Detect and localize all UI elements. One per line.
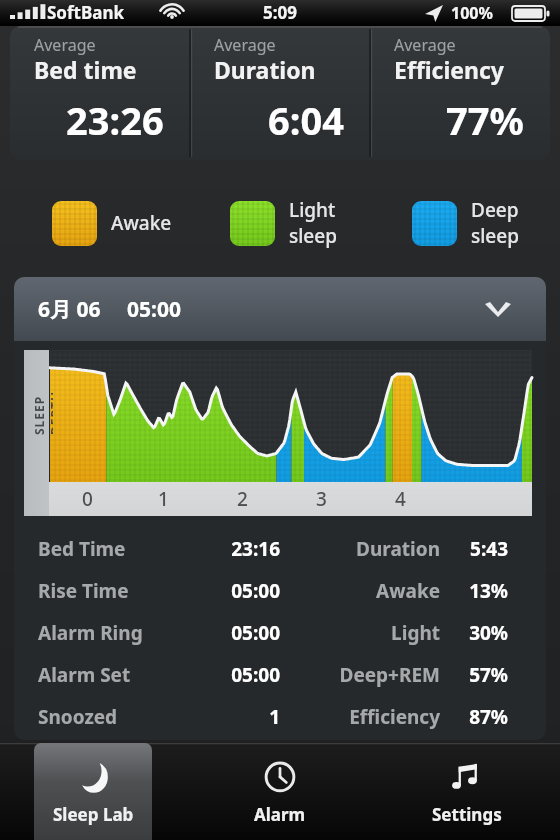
staticText: Light [289, 197, 336, 223]
button[interactable]: Expand session [480, 291, 516, 327]
staticText: Light [300, 620, 440, 646]
staticText: Alarm [254, 803, 306, 826]
staticText: 100% [451, 2, 493, 24]
button[interactable]: Rise Time [14, 570, 546, 612]
staticText: 57% [450, 662, 508, 688]
button[interactable]: Alarm [221, 743, 339, 840]
staticText: 05:00 [170, 662, 280, 688]
button[interactable]: Alarm Ring [14, 612, 546, 654]
staticText: 77% [446, 94, 524, 146]
staticText: 1 [158, 486, 169, 512]
staticText: Average [34, 34, 96, 56]
staticText: Deep [471, 197, 519, 223]
staticText: Average [394, 34, 456, 56]
staticText: 3 [316, 486, 327, 512]
button[interactable]: Alarm Set [14, 654, 546, 696]
staticText: 0 [82, 486, 93, 512]
staticText: Deep+REM [300, 662, 440, 688]
staticText: SLEEP DEPTH [31, 363, 53, 435]
staticText: Duration [214, 54, 316, 85]
staticText: 6:04 [268, 94, 344, 146]
staticText: Alarm Ring [38, 620, 170, 646]
staticText: 2 [237, 486, 248, 512]
button[interactable]: 6月 06 [14, 277, 546, 341]
staticText: 6月 06 [38, 295, 101, 324]
staticText: Awake [300, 578, 440, 604]
staticText: Efficiency [300, 704, 440, 730]
staticText: 5:43 [450, 536, 508, 562]
staticText: Efficiency [394, 54, 504, 85]
staticText: 23:16 [170, 536, 280, 562]
button[interactable]: Awake [52, 193, 172, 253]
staticText: Sleep Lab [53, 803, 134, 826]
button[interactable]: Bed Time [14, 528, 546, 570]
staticText: Duration [300, 536, 440, 562]
button[interactable]: Average [10, 26, 550, 160]
staticText: Alarm Set [38, 662, 170, 688]
staticText: 23:26 [66, 94, 164, 146]
staticText: 87% [450, 704, 508, 730]
staticText: 05:00 [170, 620, 280, 646]
button[interactable]: Deep [412, 193, 519, 253]
staticText: Snoozed [38, 704, 170, 730]
staticText: sleep [471, 223, 519, 249]
staticText: 05:00 [170, 578, 280, 604]
staticText: 05:00 [127, 295, 181, 324]
button[interactable]: Snoozed [14, 696, 546, 738]
staticText: Settings [432, 803, 502, 826]
staticText: 4 [395, 486, 406, 512]
button[interactable]: Settings [408, 743, 526, 840]
staticText: SoftBank [47, 1, 125, 24]
button[interactable]: Sleep Lab [34, 743, 152, 840]
staticText: 30% [450, 620, 508, 646]
staticText: Awake [111, 210, 172, 236]
staticText: Bed time [34, 54, 137, 85]
button[interactable]: Light [230, 193, 337, 253]
staticText: 13% [450, 578, 508, 604]
staticText: Average [214, 34, 276, 56]
staticText: 1 [170, 704, 280, 730]
staticText: sleep [289, 223, 337, 249]
staticText: Rise Time [38, 578, 170, 604]
staticText: 5:09 [0, 1, 560, 24]
staticText: Bed Time [38, 536, 170, 562]
